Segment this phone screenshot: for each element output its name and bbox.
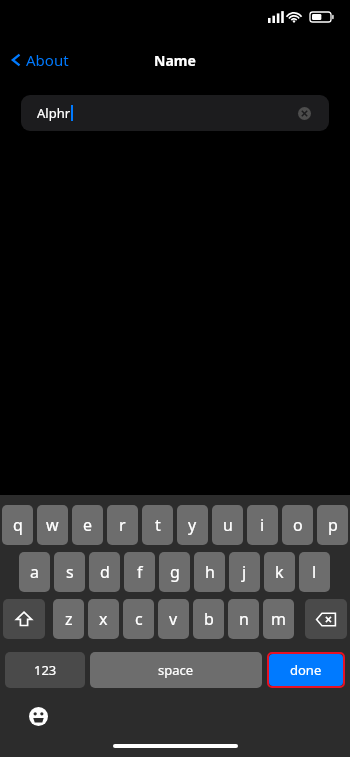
staticText: e [83, 514, 93, 536]
staticText: r [119, 514, 126, 536]
button[interactable]: Backspace [305, 599, 347, 639]
staticText: p [328, 514, 338, 536]
staticText: t [155, 514, 161, 536]
button[interactable]: p [317, 505, 348, 545]
staticText: v [169, 608, 178, 630]
staticText: m [271, 608, 286, 630]
button[interactable]: e [72, 505, 103, 545]
button[interactable]: f [124, 552, 155, 592]
button[interactable]: r [107, 505, 138, 545]
button[interactable]: 123 [5, 652, 85, 688]
button[interactable]: space [90, 652, 262, 688]
staticText: o [293, 514, 303, 536]
button[interactable]: j [229, 552, 260, 592]
staticText: q [13, 514, 23, 536]
button[interactable]: q [2, 505, 33, 545]
staticText: u [223, 514, 233, 536]
button[interactable]: b [193, 599, 224, 639]
button[interactable]: Clear text [298, 107, 311, 120]
button[interactable]: x [88, 599, 119, 639]
staticText: h [205, 561, 215, 583]
button[interactable]: Alphr [21, 95, 329, 131]
button[interactable]: u [212, 505, 243, 545]
button[interactable]: w [37, 505, 68, 545]
button[interactable]: v [158, 599, 189, 639]
button[interactable]: done [269, 654, 343, 686]
staticText: y [188, 514, 197, 536]
staticText: b [204, 608, 214, 630]
button[interactable]: o [282, 505, 313, 545]
button[interactable]: Emoji keyboard [29, 707, 48, 726]
staticText: c [135, 608, 143, 630]
button[interactable]: Shift [3, 599, 45, 639]
button[interactable]: t [142, 505, 173, 545]
button[interactable]: m [263, 599, 294, 639]
button[interactable]: h [194, 552, 225, 592]
button[interactable]: l [299, 552, 330, 592]
button[interactable]: y [177, 505, 208, 545]
staticText: f [137, 561, 143, 583]
staticText: l [312, 561, 317, 583]
button[interactable]: s [54, 552, 85, 592]
button[interactable]: a [19, 552, 50, 592]
button[interactable]: d [89, 552, 120, 592]
button[interactable]: About [8, 50, 69, 70]
staticText: z [65, 608, 73, 630]
staticText: d [100, 561, 110, 583]
staticText: n [239, 608, 249, 630]
staticText: Name [154, 51, 196, 70]
staticText: a [30, 561, 39, 583]
button[interactable]: g [159, 552, 190, 592]
staticText: Alphr [37, 104, 71, 122]
staticText: i [260, 514, 265, 536]
staticText: g [170, 561, 180, 583]
staticText: j [242, 561, 247, 583]
staticText: About [26, 50, 69, 70]
button[interactable]: z [53, 599, 84, 639]
staticText: done [290, 661, 322, 679]
staticText: s [66, 561, 74, 583]
button[interactable]: c [123, 599, 154, 639]
staticText: w [46, 514, 59, 536]
staticText: 123 [34, 661, 57, 679]
staticText: space [158, 661, 194, 679]
button[interactable]: i [247, 505, 278, 545]
staticText: k [275, 561, 284, 583]
button[interactable]: k [264, 552, 295, 592]
staticText: x [99, 608, 108, 630]
button[interactable]: n [228, 599, 259, 639]
